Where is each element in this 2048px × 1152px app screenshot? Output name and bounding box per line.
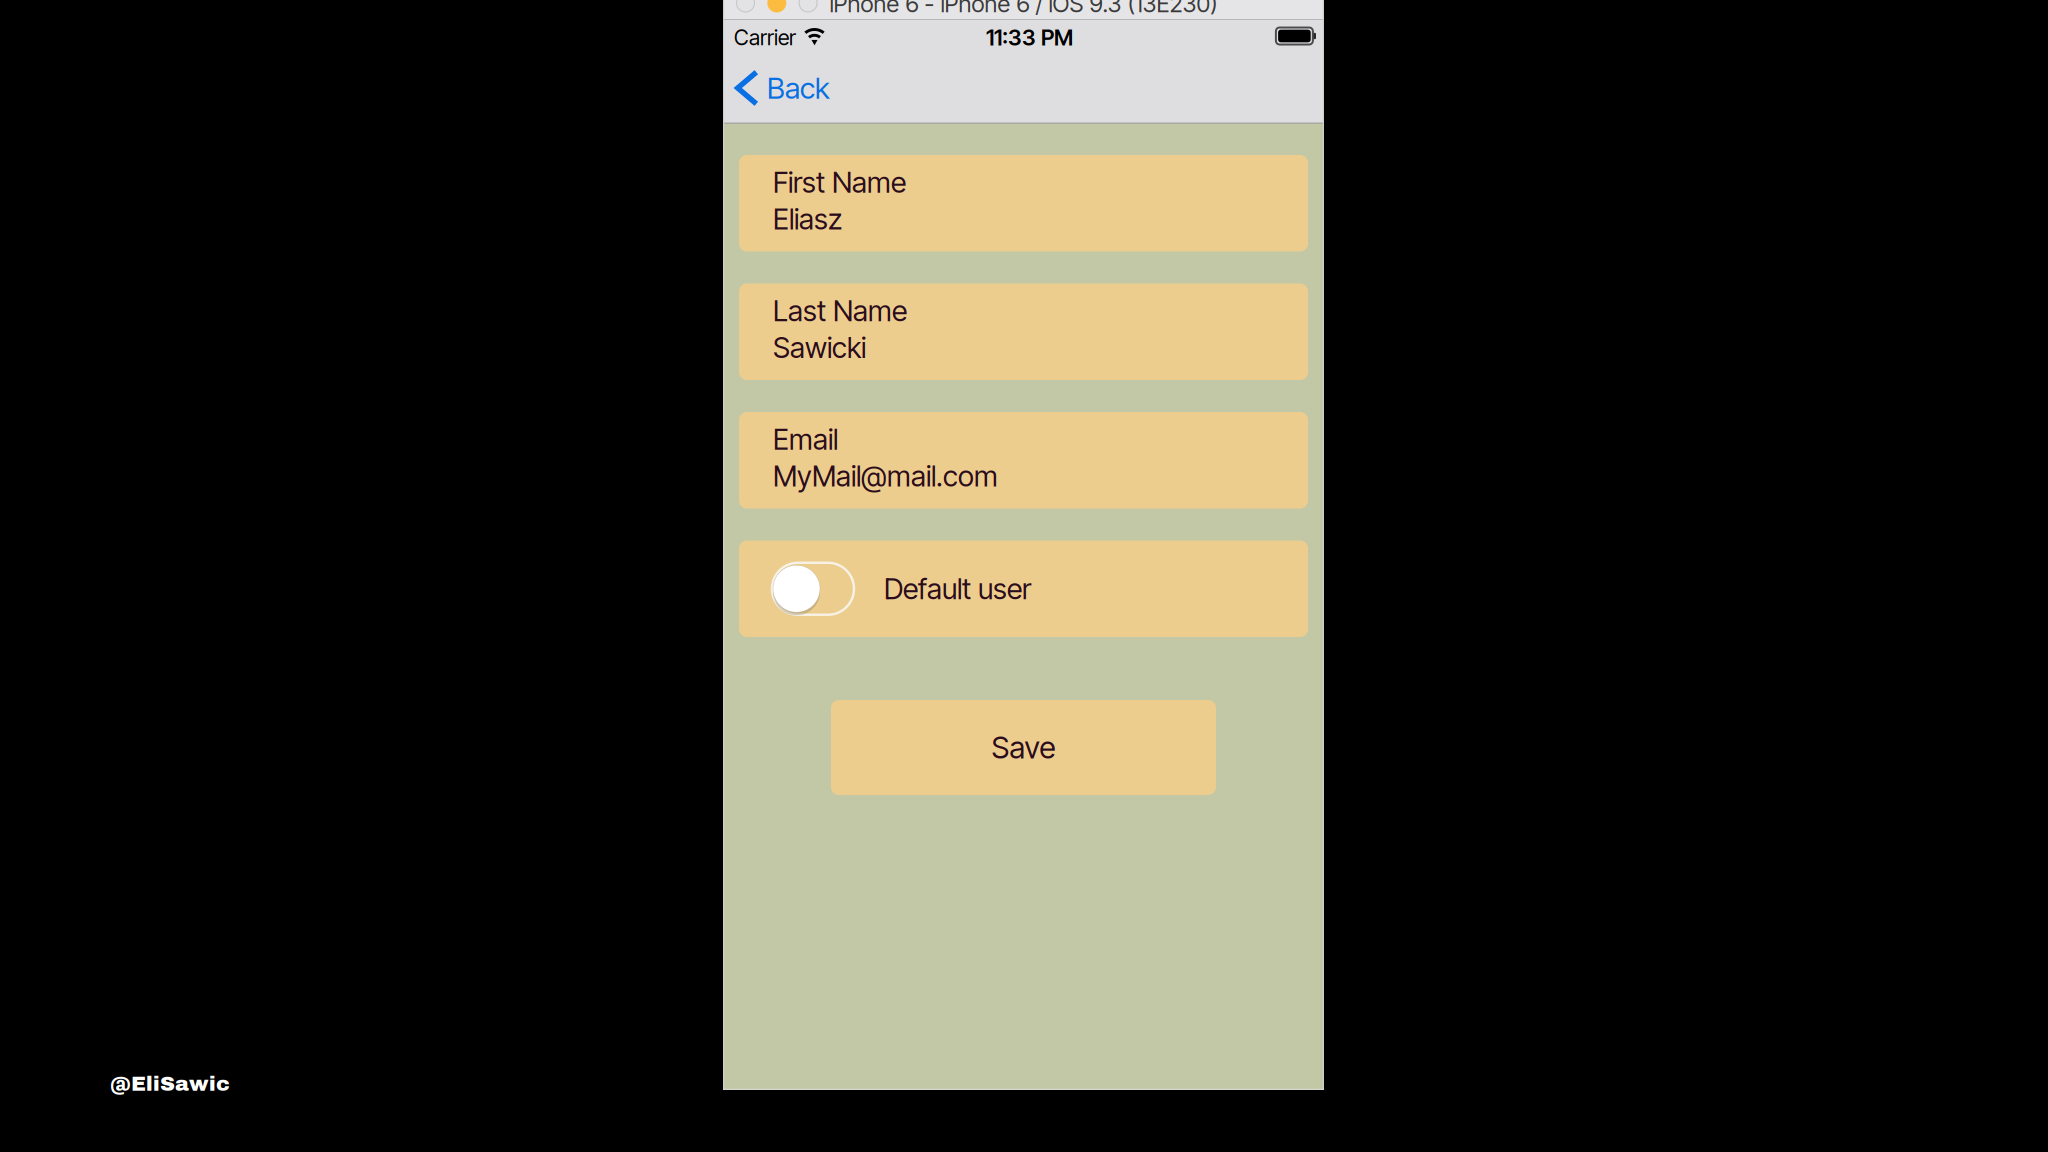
- button[interactable]: Default user: [739, 540, 1308, 637]
- staticText: Last Name: [773, 294, 907, 328]
- staticText: iPhone 6 - iPhone 6 / iOS 9.3 (13E230): [829, 0, 1217, 18]
- staticText: 11:33 PM: [986, 24, 1073, 51]
- staticText: Eliasz: [773, 202, 842, 236]
- staticText: Carrier: [734, 25, 796, 50]
- staticText: MyMail@mail.com: [773, 459, 998, 493]
- staticText: First Name: [773, 165, 906, 200]
- button[interactable]: Save: [831, 700, 1216, 795]
- button[interactable]: Last Name: [739, 283, 1308, 380]
- staticText: Email: [773, 422, 838, 457]
- button[interactable]: First Name: [739, 155, 1308, 251]
- staticText: @EliSawic: [110, 1072, 230, 1095]
- staticText: Sawicki: [773, 330, 866, 365]
- staticText: Save: [991, 729, 1055, 766]
- button[interactable]: Email: [739, 412, 1308, 508]
- staticText: Default user: [884, 571, 1031, 606]
- button[interactable]: Back: [723, 52, 844, 124]
- staticText: Back: [767, 70, 830, 106]
